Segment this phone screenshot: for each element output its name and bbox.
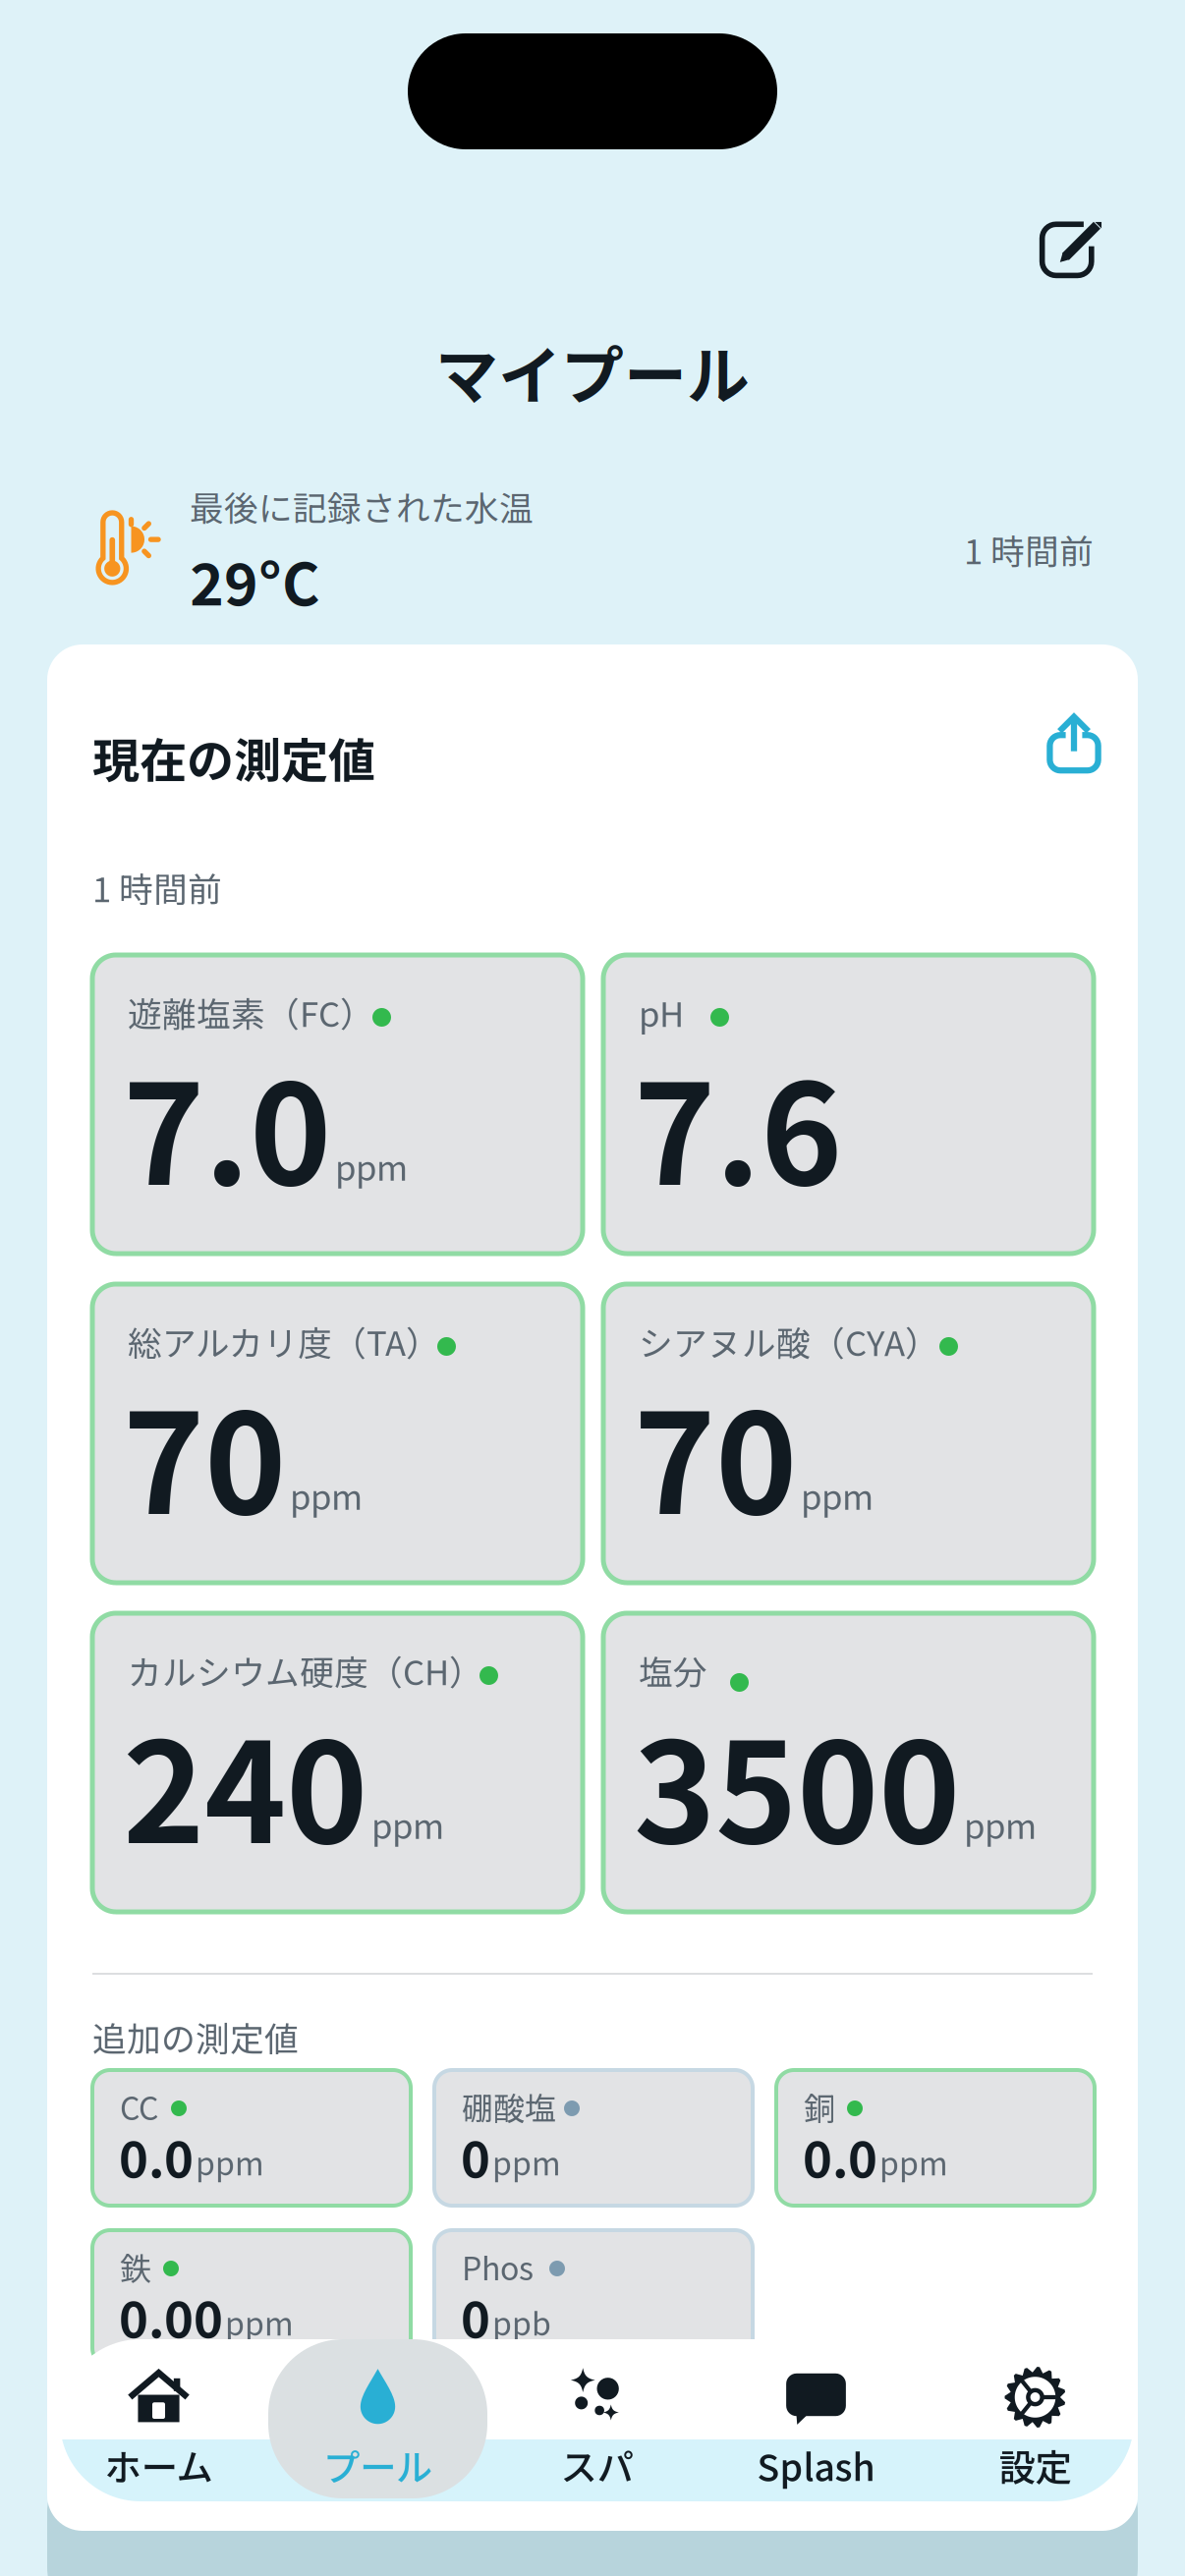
- button[interactable]: スパ: [487, 2339, 706, 2498]
- staticText: 1 時間前: [964, 525, 1094, 574]
- staticText: 240: [123, 1682, 367, 1883]
- staticText: ppm: [371, 1799, 444, 1849]
- staticText: カルシウム硬度（CH）: [128, 1646, 483, 1695]
- staticText: 硼酸塩: [462, 2084, 556, 2129]
- staticText: 0.0: [119, 2120, 194, 2192]
- staticText: ppm: [964, 1799, 1037, 1849]
- staticText: 追加の測定値: [92, 2012, 299, 2061]
- button[interactable]: プール: [268, 2339, 487, 2498]
- staticText: CC: [120, 2084, 158, 2129]
- staticText: ppm: [879, 2139, 948, 2184]
- button[interactable]: ホーム: [49, 2339, 268, 2498]
- staticText: ppm: [492, 2139, 561, 2184]
- staticText: ホーム: [105, 2438, 213, 2492]
- staticText: 最後に記録された水温: [190, 481, 534, 531]
- staticText: pH: [639, 987, 684, 1037]
- button[interactable]: Share: [1033, 701, 1115, 784]
- button[interactable]: 総アルカリ度（TA）: [92, 1284, 583, 1583]
- staticText: シアヌル酸（CYA）: [639, 1316, 939, 1366]
- staticText: 7.0: [123, 1024, 331, 1225]
- button[interactable]: 硼酸塩: [434, 2070, 753, 2206]
- staticText: ppm: [335, 1141, 408, 1190]
- button[interactable]: 遊離塩素（FC）: [92, 955, 583, 1254]
- staticText: 塩分: [639, 1646, 707, 1695]
- button[interactable]: シアヌル酸（CYA）: [603, 1284, 1094, 1583]
- staticText: 1 時間前: [92, 863, 222, 912]
- staticText: Phos: [462, 2244, 534, 2289]
- staticText: ppm: [290, 1470, 363, 1520]
- staticText: 総アルカリ度（TA）: [128, 1316, 440, 1366]
- staticText: 70: [634, 1353, 797, 1554]
- button[interactable]: pH: [603, 955, 1094, 1254]
- button[interactable]: Splash: [706, 2339, 926, 2498]
- staticText: ppm: [225, 2299, 294, 2344]
- staticText: 鉄: [120, 2244, 151, 2289]
- staticText: マイプール: [435, 326, 750, 417]
- button[interactable]: 塩分: [603, 1613, 1094, 1912]
- staticText: 遊離塩素（FC）: [128, 987, 374, 1037]
- staticText: ppm: [196, 2139, 264, 2184]
- staticText: 0: [461, 2280, 490, 2352]
- staticText: スパ: [561, 2438, 633, 2492]
- button[interactable]: CC: [92, 2070, 411, 2206]
- button[interactable]: Edit: [1025, 202, 1119, 297]
- staticText: Splash: [757, 2438, 875, 2492]
- button[interactable]: 鉄: [92, 2230, 411, 2366]
- button[interactable]: 銅: [776, 2070, 1095, 2206]
- staticText: プール: [323, 2438, 432, 2492]
- staticText: 現在の測定値: [92, 723, 375, 791]
- staticText: 0.0: [803, 2120, 877, 2192]
- staticText: 0: [461, 2120, 490, 2192]
- staticText: 7.6: [634, 1024, 842, 1225]
- staticText: 3500: [634, 1682, 960, 1883]
- staticText: 70: [123, 1353, 286, 1554]
- button[interactable]: Phos: [434, 2230, 753, 2366]
- staticText: 銅: [804, 2084, 835, 2129]
- staticText: 29°C: [190, 539, 319, 622]
- button[interactable]: 設定: [926, 2339, 1145, 2498]
- staticText: 0.00: [119, 2280, 223, 2352]
- staticText: ppb: [492, 2299, 551, 2344]
- staticText: 設定: [999, 2438, 1072, 2492]
- button[interactable]: カルシウム硬度（CH）: [92, 1613, 583, 1912]
- staticText: ppm: [801, 1470, 874, 1520]
